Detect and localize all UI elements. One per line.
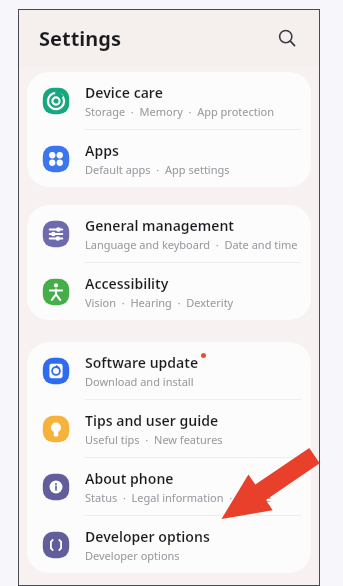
- staticText: Tips and user guide: [85, 411, 219, 430]
- staticText: Developer options: [85, 527, 210, 546]
- staticText: Apps: [85, 141, 119, 160]
- staticText: Settings: [39, 25, 121, 52]
- button[interactable]: Device care: [27, 72, 311, 129]
- staticText: About phone: [85, 469, 174, 488]
- staticText: Status · Legal information · Phone name: [85, 490, 299, 505]
- button[interactable]: Apps: [27, 130, 311, 187]
- staticText: Vision · Hearing · Dexterity: [85, 295, 234, 310]
- staticText: Storage · Memory · App protection: [85, 104, 275, 119]
- button[interactable]: Tips and user guide: [27, 400, 311, 457]
- staticText: Developer options: [85, 548, 180, 563]
- staticText: Accessibility: [85, 274, 169, 293]
- staticText: General management: [85, 216, 235, 235]
- staticText: Default apps · App settings: [85, 162, 230, 177]
- button[interactable]: Search: [267, 18, 307, 58]
- button[interactable]: Accessibility: [27, 263, 311, 320]
- button[interactable]: About phone: [27, 458, 311, 515]
- staticText: Language and keyboard · Date and time: [85, 237, 298, 252]
- staticText: Software update: [85, 353, 199, 372]
- button[interactable]: General management: [27, 205, 311, 262]
- staticText: Download and install: [85, 374, 194, 389]
- staticText: Useful tips · New features: [85, 432, 223, 447]
- button[interactable]: Software update: [27, 342, 311, 399]
- button[interactable]: Developer options: [27, 516, 311, 573]
- staticText: Device care: [85, 83, 163, 102]
